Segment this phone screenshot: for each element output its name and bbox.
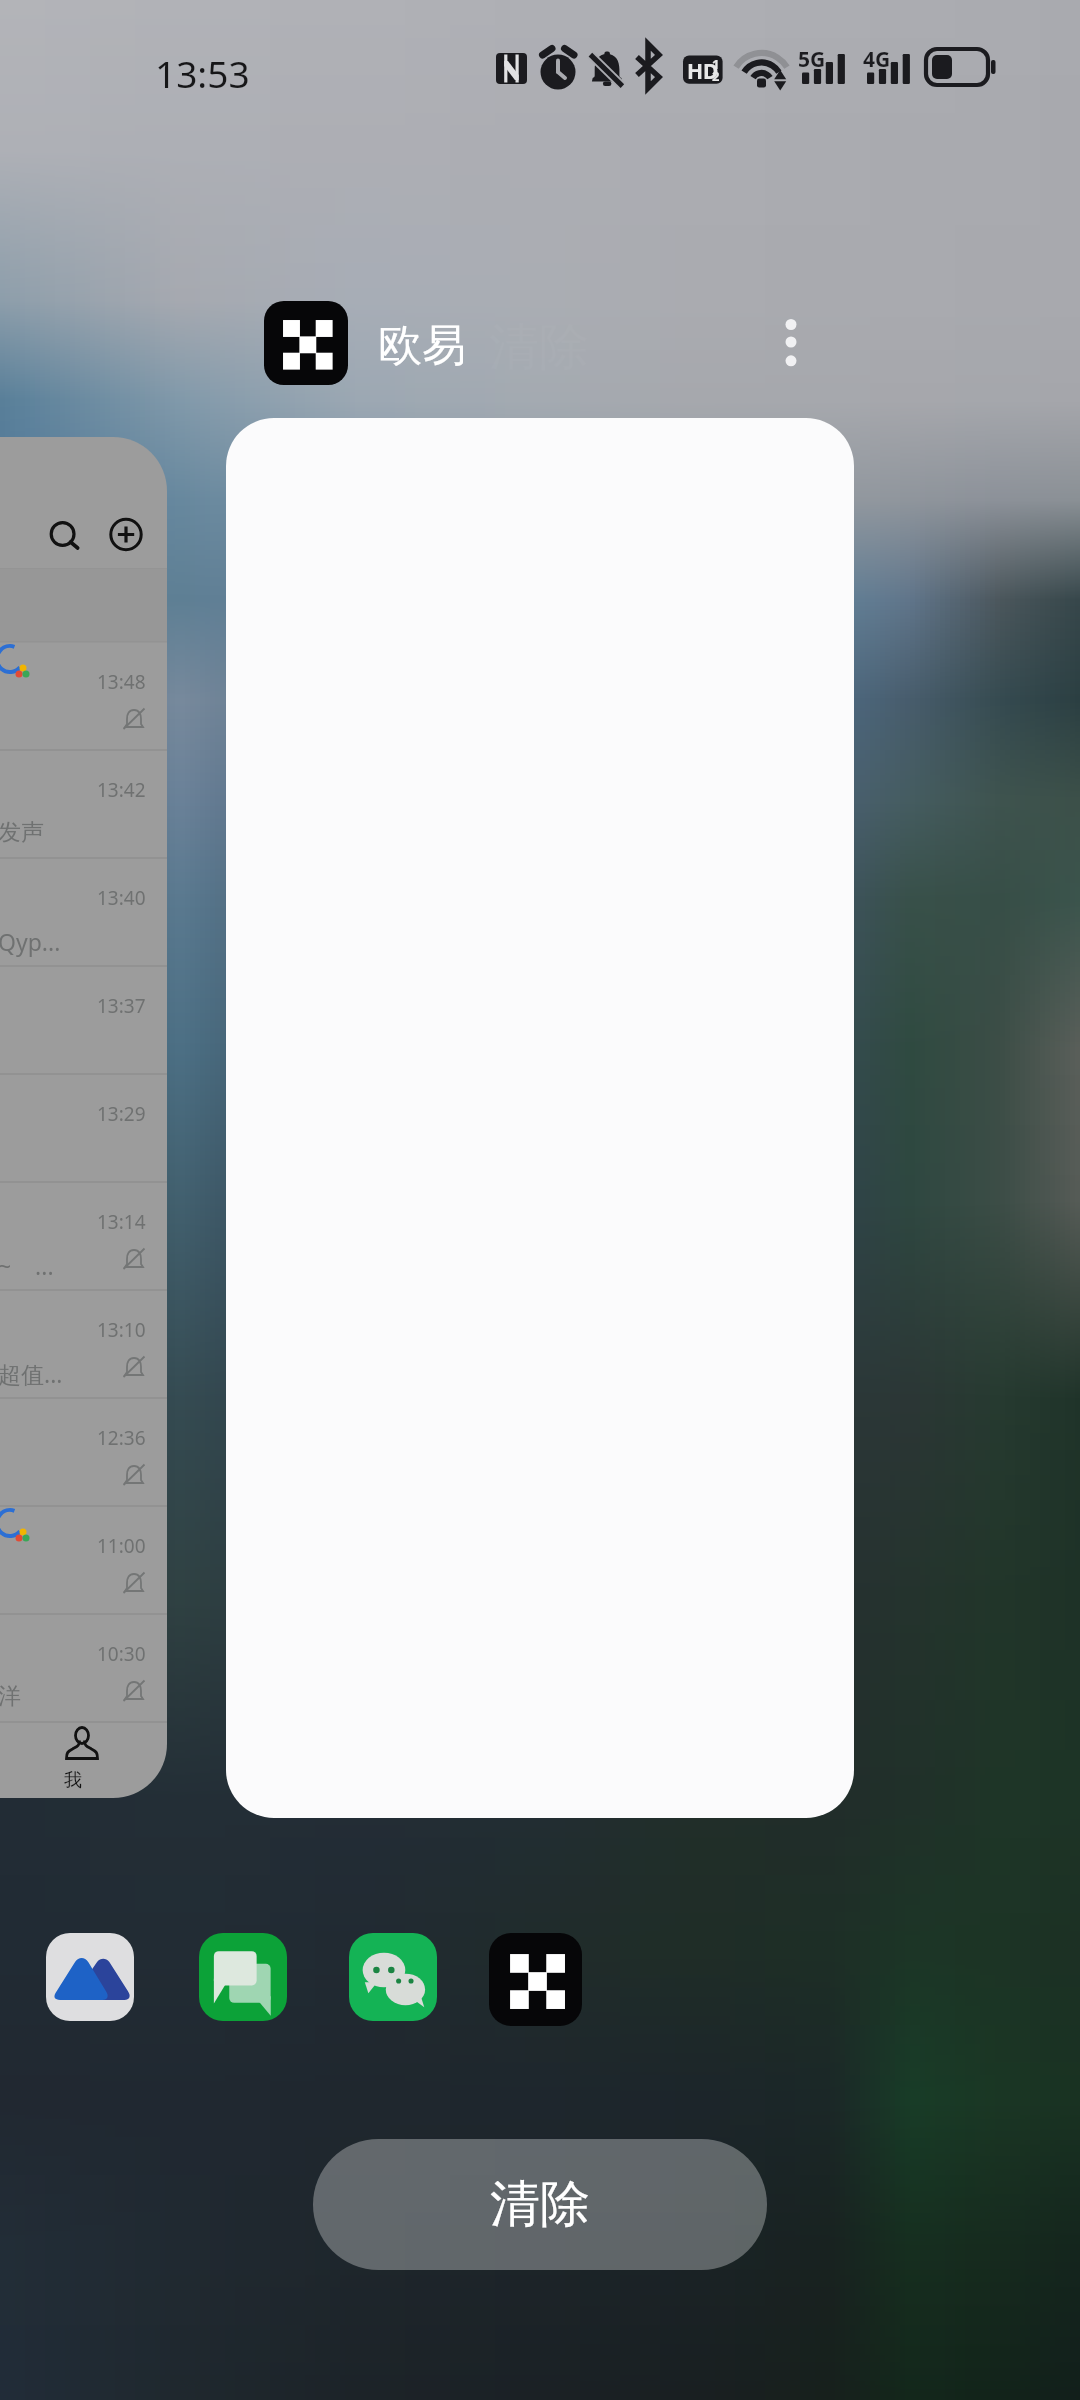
staticText: HD (687, 57, 719, 86)
staticText: 发声 (0, 818, 44, 847)
staticText: 4G (863, 45, 891, 74)
staticText: 洋 (0, 1682, 21, 1711)
button[interactable]: 13:37 (0, 966, 167, 1074)
staticText: 11:00 (97, 1533, 146, 1559)
staticText: 10:30 (97, 1641, 146, 1667)
staticText: 1 (712, 55, 720, 73)
button[interactable]: 13:48 (0, 437, 167, 1798)
staticText: 13:37 (97, 993, 146, 1019)
staticText: 13:14 (97, 1209, 146, 1235)
staticText: 13:10 (97, 1317, 146, 1343)
staticText: 13:48 (97, 669, 146, 695)
button[interactable]: OKX (489, 1933, 582, 2026)
button[interactable]: Gallery (46, 1933, 134, 2021)
staticText: 5G (798, 45, 826, 74)
staticText: 欧易 (378, 318, 466, 373)
button[interactable] (226, 418, 854, 1818)
button[interactable]: 13:29 (0, 1074, 167, 1182)
button[interactable]: 我 (55, 1717, 115, 1797)
button[interactable]: 13:10 (0, 1290, 167, 1398)
staticText: 13:42 (97, 777, 146, 803)
button[interactable]: 清除 (313, 2139, 767, 2270)
button[interactable]: WeChat (349, 1933, 437, 2021)
button[interactable]: 12:36 (0, 1398, 167, 1506)
staticText: 超值... (0, 1358, 63, 1389)
staticText: 清除 (490, 2173, 590, 2236)
staticText: Qyp... (0, 926, 61, 957)
staticText: ~ ... (0, 1250, 54, 1281)
button[interactable]: 11:00 (0, 1506, 167, 1614)
button[interactable]: More options (751, 300, 831, 380)
button[interactable]: 13:42 (0, 750, 167, 858)
button[interactable]: 10:30 (0, 1614, 167, 1722)
button[interactable]: 13:14 (0, 1182, 167, 1290)
staticText: 2 (712, 67, 720, 85)
button[interactable]: 13:40 (0, 858, 167, 966)
staticText: 我 (64, 1769, 82, 1792)
button[interactable]: Messages (199, 1933, 287, 2021)
staticText: 13:53 (155, 48, 250, 98)
button[interactable]: 13:48 (0, 642, 167, 750)
staticText: 13:40 (97, 885, 146, 911)
staticText: 12:36 (97, 1425, 146, 1451)
staticText: 13:29 (97, 1101, 146, 1127)
